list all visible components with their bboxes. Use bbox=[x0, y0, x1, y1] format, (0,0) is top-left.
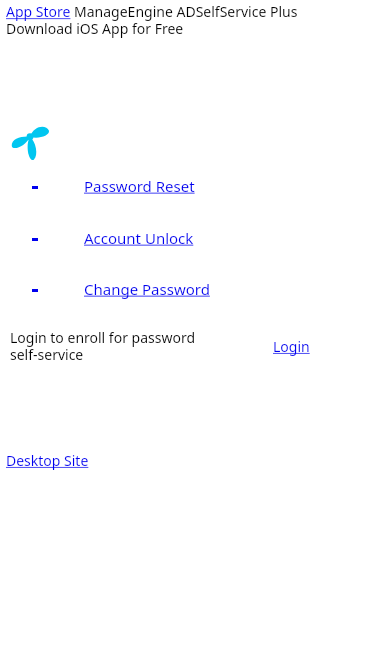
button[interactable]: Password Reset bbox=[83, 175, 196, 197]
staticText: Password Reset bbox=[84, 176, 195, 196]
staticText: Login to enroll for password self-servic… bbox=[10, 328, 196, 364]
staticText: Change Password bbox=[84, 279, 210, 299]
button[interactable]: Login bbox=[272, 336, 311, 357]
staticText: Desktop Site bbox=[6, 451, 89, 470]
button[interactable]: App Store ManageEngine ADSelfService Plu… bbox=[6, 2, 298, 38]
button[interactable]: Desktop Site bbox=[5, 450, 90, 471]
other: Telenor logo bbox=[11, 119, 49, 161]
button[interactable]: Account Unlock bbox=[83, 227, 195, 249]
staticText: Account Unlock bbox=[84, 228, 194, 248]
staticText: App Store ManageEngine ADSelfService Plu… bbox=[6, 2, 298, 38]
button[interactable]: Change Password bbox=[83, 278, 211, 300]
staticText: Login bbox=[273, 337, 310, 356]
